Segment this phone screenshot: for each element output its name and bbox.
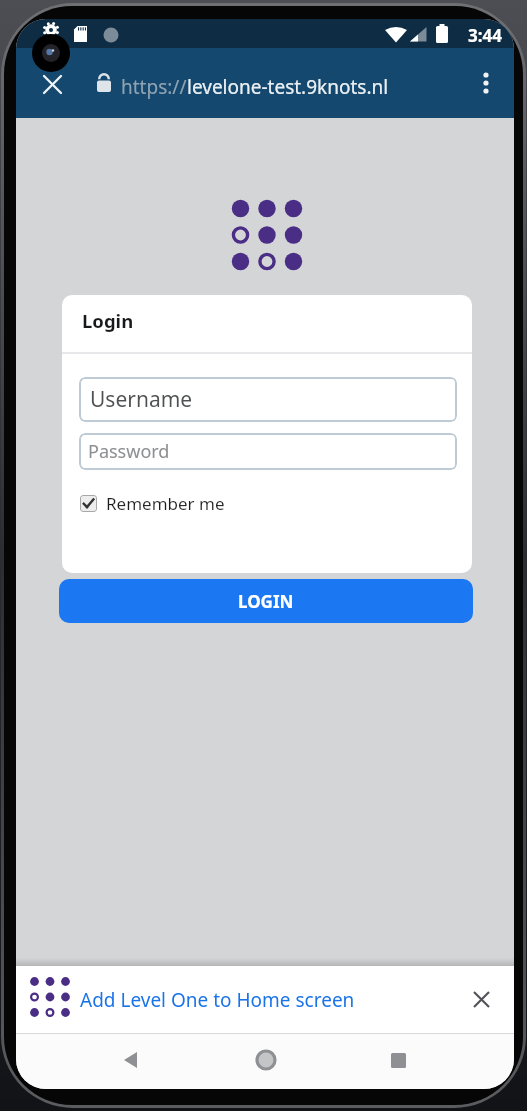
button[interactable]: LOGIN — [59, 579, 473, 623]
staticText: LOGIN — [238, 590, 294, 613]
button[interactable] — [250, 1044, 282, 1076]
button[interactable] — [38, 70, 66, 98]
button[interactable]: Remember me — [80, 492, 225, 515]
staticText: 3:44 — [468, 24, 502, 47]
staticText: Add Level One to Home screen — [80, 987, 355, 1013]
button[interactable]: Password — [79, 433, 457, 470]
staticText: Password — [88, 439, 170, 464]
button[interactable]: Username — [79, 377, 457, 422]
staticText: Remember me — [106, 492, 225, 515]
staticText: https:// — [121, 74, 187, 100]
button[interactable] — [114, 1044, 146, 1076]
staticText: Login — [82, 308, 134, 333]
staticText: Username — [90, 385, 193, 414]
button[interactable] — [472, 69, 500, 97]
button[interactable] — [382, 1044, 414, 1076]
staticText: levelone-test.9knots.nl — [187, 74, 389, 100]
button[interactable] — [465, 983, 497, 1015]
button[interactable]: Add Level One to Home screen — [16, 966, 514, 1033]
